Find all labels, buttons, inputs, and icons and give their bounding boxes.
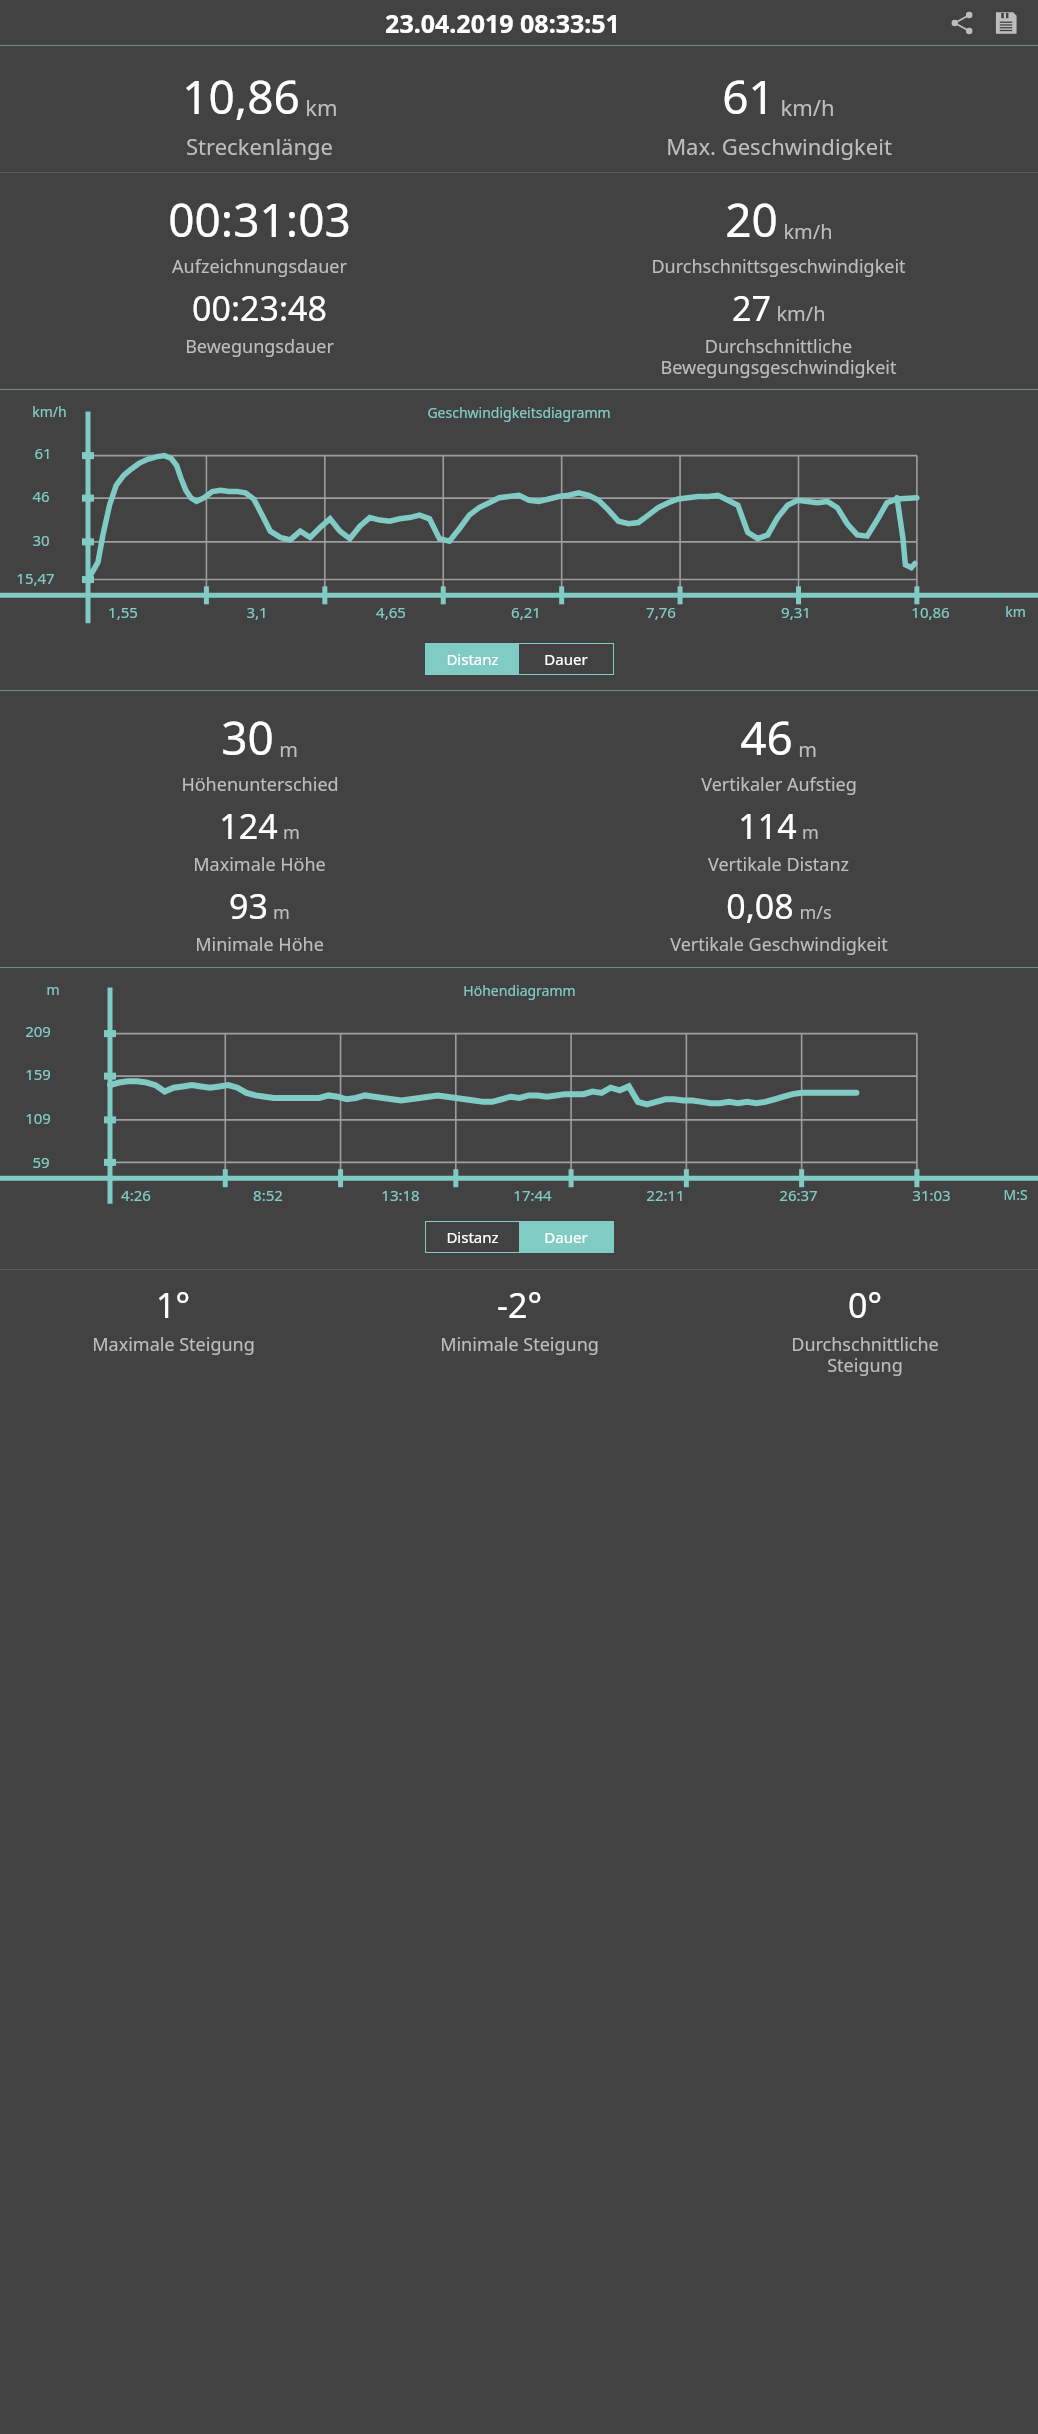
staticText: 209 [25, 1021, 51, 1041]
staticText: M:S [1003, 1185, 1028, 1204]
button[interactable]: Save [988, 5, 1024, 41]
staticText: 00:23:48 [192, 285, 327, 331]
staticText: km/h [780, 92, 835, 122]
staticText: 114 [738, 803, 797, 849]
staticText: Durchschnittsgeschwindigkeit [651, 254, 906, 279]
staticText: 20 [725, 188, 778, 251]
staticText: Vertikale Distanz [708, 852, 849, 877]
staticText: 1° [156, 1282, 190, 1328]
staticText: km/h [32, 402, 67, 421]
staticText: km/h [783, 218, 833, 245]
staticText: m [46, 980, 60, 999]
button[interactable]: Dauer [519, 1222, 613, 1252]
staticText: Dauer [544, 1227, 588, 1247]
staticText: 46 [740, 706, 793, 769]
staticText: m [279, 736, 298, 763]
staticText: 13:18 [381, 1185, 420, 1205]
staticText: 109 [25, 1108, 51, 1128]
staticText: m [273, 900, 290, 925]
staticText: 61 [34, 443, 52, 463]
button[interactable]: Distanz [426, 644, 519, 674]
staticText: Distanz [446, 1227, 499, 1247]
staticText: Geschwindigkeitsdiagramm [427, 403, 611, 422]
staticText: Dauer [544, 649, 588, 669]
staticText: Durchschnittliche Bewegungsgeschwindigke… [660, 334, 897, 379]
staticText: 0,08 [726, 883, 794, 929]
staticText: 17:44 [513, 1185, 552, 1205]
staticText: Distanz [446, 649, 499, 669]
staticText: 4,65 [376, 602, 406, 622]
staticText: 30 [221, 706, 274, 769]
staticText: m [798, 736, 817, 763]
staticText: 6,21 [511, 602, 541, 622]
staticText: Max. Geschwindigkeit [666, 131, 892, 161]
staticText: 22:11 [646, 1185, 685, 1205]
staticText: 159 [25, 1064, 51, 1084]
staticText: Höhendiagramm [463, 981, 576, 1000]
staticText: km [1005, 602, 1026, 621]
staticText: 30 [32, 530, 50, 550]
staticText: 59 [32, 1152, 50, 1172]
staticText: 7,76 [646, 602, 676, 622]
staticText: Vertikaler Aufstieg [701, 772, 857, 797]
staticText: 15,47 [16, 568, 55, 588]
staticText: Minimale Höhe [195, 932, 324, 957]
staticText: 10,86 [911, 602, 950, 622]
staticText: 124 [219, 803, 278, 849]
staticText: m/s [799, 900, 832, 925]
button[interactable]: Distanz [426, 1222, 519, 1252]
button[interactable]: Dauer [519, 644, 613, 674]
staticText: 1,55 [108, 602, 138, 622]
staticText: 31:03 [912, 1185, 951, 1205]
staticText: 00:31:03 [168, 188, 351, 251]
staticText: 26:37 [779, 1185, 818, 1205]
staticText: Minimale Steigung [440, 1332, 599, 1357]
staticText: 0° [848, 1282, 882, 1328]
staticText: Maximale Höhe [193, 852, 326, 877]
staticText: 10,86 [182, 65, 300, 128]
staticText: Durchschnittliche Steigung [791, 1332, 939, 1377]
staticText: 93 [229, 883, 268, 929]
staticText: 8:52 [253, 1185, 283, 1205]
button[interactable]: Share [944, 5, 980, 41]
staticText: Höhenunterschied [181, 772, 339, 797]
staticText: 46 [32, 486, 50, 506]
staticText: Maximale Steigung [92, 1332, 255, 1357]
staticText: Vertikale Geschwindigkeit [670, 932, 888, 957]
staticText: 4:26 [121, 1185, 151, 1205]
staticText: Bewegungsdauer [185, 334, 334, 359]
staticText: 9,31 [781, 602, 811, 622]
staticText: 27 [732, 285, 771, 331]
staticText: m [802, 820, 819, 845]
staticText: -2° [497, 1282, 542, 1328]
staticText: 61 [722, 65, 775, 128]
staticText: m [283, 820, 300, 845]
staticText: 3,1 [246, 602, 268, 622]
staticText: km [305, 92, 338, 122]
staticText: km/h [776, 300, 826, 327]
staticText: Aufzeichnungsdauer [172, 254, 347, 279]
staticText: 23.04.2019 08:33:51 [385, 6, 620, 40]
staticText: Streckenlänge [186, 131, 333, 161]
